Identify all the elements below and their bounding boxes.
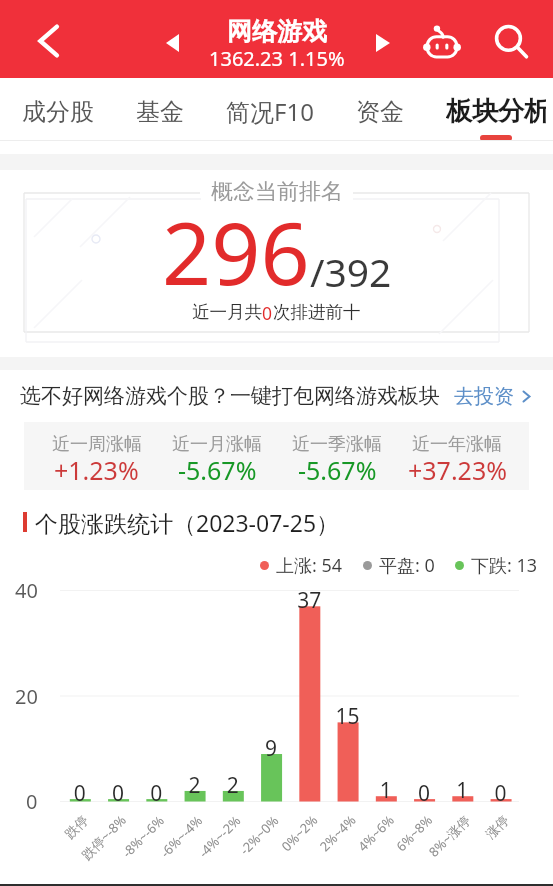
staticText: 次排进前十 bbox=[273, 301, 361, 323]
button[interactable]: Next sector bbox=[361, 21, 405, 65]
staticText: 基金 bbox=[136, 97, 184, 127]
button[interactable]: 基金 bbox=[129, 78, 191, 141]
button[interactable]: Back bbox=[20, 12, 78, 70]
staticText: 近一年涨幅 bbox=[412, 433, 502, 456]
staticText: +1.23% bbox=[54, 453, 139, 487]
staticText: -5.67% bbox=[298, 453, 377, 487]
button[interactable]: 资金 bbox=[349, 78, 411, 141]
staticText: 去投资 bbox=[454, 384, 514, 409]
button[interactable]: 选不好网络游戏个股？一键打包网络游戏板块 bbox=[0, 370, 553, 422]
staticText: /392 bbox=[310, 245, 392, 298]
staticText: 1362.23 1.15% bbox=[209, 45, 345, 72]
staticText: 概念当前排名 bbox=[211, 178, 343, 206]
staticText: 近一周涨幅 bbox=[52, 433, 142, 456]
button[interactable]: AI assistant bbox=[417, 19, 467, 69]
staticText: 下跌: 13 bbox=[471, 553, 538, 578]
staticText: 选不好网络游戏个股？一键打包网络游戏板块 bbox=[20, 383, 440, 409]
staticText: 板块分析 bbox=[446, 95, 546, 128]
staticText: 上涨: 54 bbox=[276, 553, 343, 578]
button[interactable]: Search bbox=[484, 15, 538, 69]
staticText: 个股涨跌统计（2023-07-25） bbox=[35, 507, 340, 538]
button[interactable]: Previous sector bbox=[150, 21, 194, 65]
staticText: +37.23% bbox=[408, 453, 507, 487]
staticText: 近一月涨幅 bbox=[172, 433, 262, 456]
staticText: 近一季涨幅 bbox=[292, 433, 382, 456]
staticText: 近一月共 bbox=[192, 301, 262, 323]
staticText: 网络游戏 bbox=[227, 16, 327, 47]
staticText: 资金 bbox=[356, 97, 404, 127]
staticText: 0 bbox=[262, 301, 273, 325]
staticText: 简况F10 bbox=[226, 95, 314, 128]
button[interactable]: 成分股 bbox=[15, 78, 101, 141]
staticText: -5.67% bbox=[178, 453, 257, 487]
staticText: 平盘: 0 bbox=[379, 553, 435, 578]
staticText: 成分股 bbox=[22, 97, 94, 127]
button[interactable]: 简况F10 bbox=[219, 78, 321, 141]
button[interactable]: 板块分析 bbox=[439, 78, 553, 141]
staticText: 296 bbox=[162, 193, 310, 310]
